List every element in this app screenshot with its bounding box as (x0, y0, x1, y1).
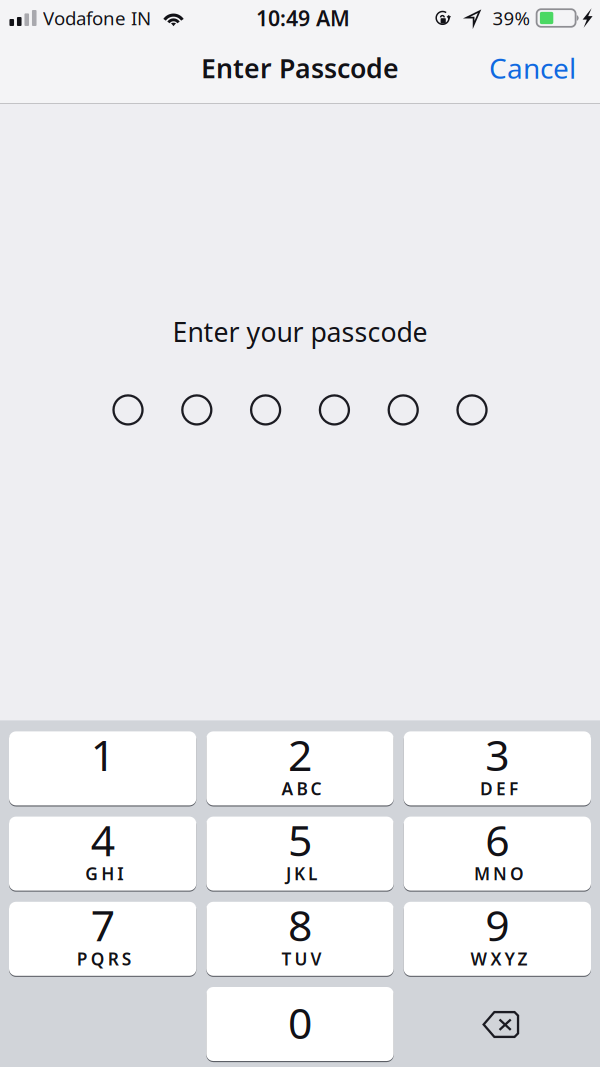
staticText: A B C (282, 777, 322, 800)
staticText: M N O (474, 862, 524, 885)
staticText: 9 (485, 896, 509, 953)
staticText: T U V (282, 947, 322, 970)
staticText: 39% (493, 6, 531, 30)
staticText: 8 (288, 896, 312, 953)
staticText: Vodafone IN (43, 6, 151, 30)
button[interactable]: 4 (9, 817, 196, 891)
button[interactable]: 3 (404, 731, 591, 805)
staticText: W X Y Z (470, 947, 527, 970)
staticText: 2 (288, 726, 312, 783)
staticText: G H I (85, 862, 123, 885)
button[interactable]: 5 (206, 817, 394, 891)
button[interactable]: Delete (404, 987, 591, 1061)
staticText: Enter Passcode (201, 50, 399, 86)
button[interactable]: Cancel (473, 39, 600, 101)
staticText: 1 (91, 726, 115, 783)
staticText: P Q R S (77, 947, 132, 970)
button[interactable]: 7 (9, 902, 196, 976)
staticText: Enter your passcode (172, 314, 427, 349)
staticText: 6 (485, 811, 509, 868)
staticText: J K L (286, 862, 317, 885)
button[interactable]: 2 (206, 731, 394, 805)
staticText: 10:49 AM (256, 4, 350, 32)
staticText: 0 (288, 994, 312, 1051)
staticText: 7 (91, 896, 115, 953)
button[interactable]: 8 (206, 902, 394, 976)
staticText: D E F (480, 777, 518, 800)
staticText: Cancel (489, 49, 576, 87)
button[interactable]: 0 (206, 987, 394, 1061)
button[interactable]: 6 (404, 817, 591, 891)
staticText: 5 (288, 811, 312, 868)
button[interactable]: 1 (9, 731, 196, 805)
staticText: 4 (91, 811, 115, 868)
button[interactable]: 9 (404, 902, 591, 976)
staticText: 3 (485, 726, 509, 783)
